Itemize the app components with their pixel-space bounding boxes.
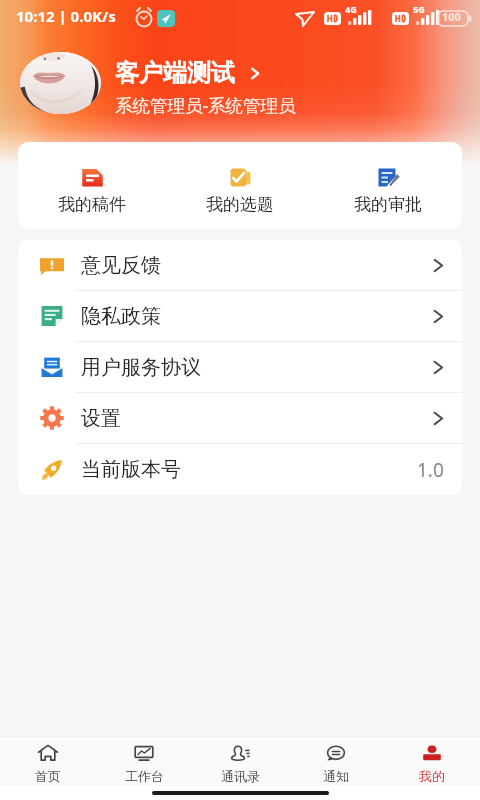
staticText: 10:12 | 0.0K/s (16, 6, 116, 26)
button[interactable]: 工作台 (96, 737, 192, 786)
button[interactable]: 我的审批 (314, 142, 462, 229)
staticText: 5G (413, 3, 425, 15)
staticText: 我的稿件 (58, 194, 126, 215)
staticText: 意见反馈 (81, 253, 161, 278)
button[interactable]: 隐私政策 (18, 291, 462, 342)
staticText: 用户服务协议 (81, 355, 201, 380)
button[interactable]: 用户服务协议 (18, 342, 462, 393)
button[interactable]: 我的稿件 (18, 142, 166, 229)
button[interactable]: 我的选题 (166, 142, 314, 229)
staticText: 1.0 (417, 457, 444, 483)
staticText: 系统管理员-系统管理员 (115, 93, 296, 117)
staticText: 我的审批 (354, 194, 422, 215)
staticText: 我的选题 (206, 194, 274, 215)
button[interactable]: 当前版本号 (18, 444, 462, 495)
button[interactable]: 通讯录 (192, 737, 288, 786)
staticText: 我的 (419, 768, 445, 784)
staticText: 首页 (35, 768, 61, 784)
button[interactable]: 我的 (384, 737, 480, 786)
staticText: 通知 (323, 768, 349, 784)
staticText: 100 (442, 9, 461, 24)
staticText: 隐私政策 (81, 304, 161, 329)
staticText: 通讯录 (221, 768, 260, 784)
staticText: 4G (345, 3, 357, 15)
button[interactable]: 意见反馈 (18, 240, 462, 291)
staticText: 当前版本号 (81, 457, 181, 482)
staticText: 客户端测试 (115, 58, 235, 88)
staticText: 设置 (81, 406, 121, 431)
staticText: 工作台 (125, 768, 164, 784)
button[interactable]: 客户端测试 (0, 48, 480, 118)
button[interactable]: 通知 (288, 737, 384, 786)
button[interactable]: 首页 (0, 737, 96, 786)
button[interactable]: 设置 (18, 393, 462, 444)
